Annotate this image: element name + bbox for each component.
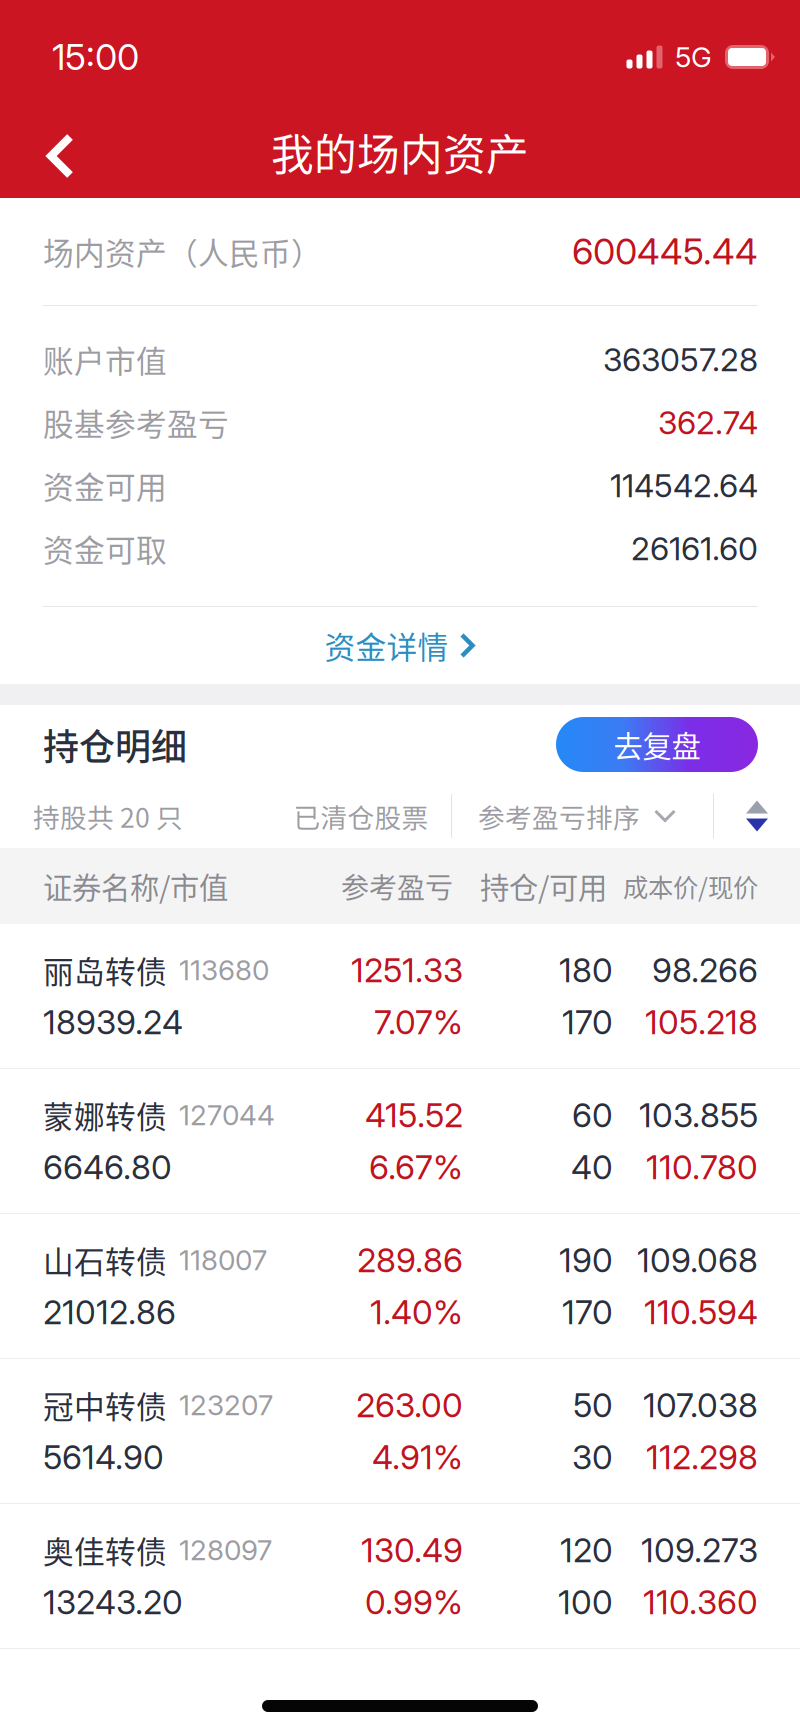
staticText: 107.038 [643,1385,758,1425]
staticText: 参考盈亏排序 [478,797,640,835]
staticText: 123207 [179,1388,273,1422]
staticText: 账户市值 [43,337,167,382]
button[interactable]: 奥佳转债 [0,1504,800,1648]
staticText: 资金详情 [324,623,448,668]
button[interactable]: 参考盈亏排序 [452,784,713,848]
button[interactable]: Sort order [714,784,800,848]
staticText: 100 [558,1582,613,1622]
staticText: 持股共 20 只 [33,797,183,835]
staticText: 110.780 [646,1147,758,1187]
staticText: 参考盈亏 [341,866,453,906]
staticText: 363057.28 [603,340,758,379]
staticText: 263.00 [356,1385,463,1425]
staticText: 15:00 [52,35,139,79]
staticText: 1.40% [370,1292,463,1332]
staticText: 7.07% [374,1002,463,1042]
staticText: 103.855 [639,1095,758,1135]
staticText: 场内资产（人民币） [43,229,322,274]
staticText: 5G [675,40,712,74]
staticText: 120 [560,1530,613,1570]
staticText: 98.266 [652,950,758,990]
staticText: 113680 [179,953,269,987]
staticText: 蒙娜转债 [43,1093,167,1137]
staticText: 奥佳转债 [43,1528,167,1572]
staticText: 成本价/现价 [623,868,758,904]
staticText: 5614.90 [43,1437,164,1477]
button[interactable]: 去复盘 [556,717,758,772]
staticText: 持仓明细 [43,718,187,770]
staticText: 110.360 [643,1582,758,1622]
button[interactable]: 蒙娜转债 [0,1069,800,1213]
staticText: 109.068 [637,1240,758,1280]
staticText: 130.49 [361,1530,463,1570]
staticText: 已清仓股票 [293,797,428,835]
staticText: 21012.86 [43,1292,176,1332]
staticText: 127044 [179,1098,275,1132]
staticText: 资金可取 [43,526,167,571]
button[interactable]: 资金详情 [0,607,800,684]
staticText: 山石转债 [43,1238,167,1282]
staticText: 362.74 [658,403,758,442]
staticText: 289.86 [357,1240,463,1280]
staticText: 6646.80 [43,1147,172,1187]
staticText: 128097 [179,1533,272,1567]
button[interactable]: 持股共 20 只 [0,784,271,848]
button[interactable]: 山石转债 [0,1214,800,1358]
staticText: 415.52 [365,1095,463,1135]
staticText: 4.91% [372,1437,463,1477]
staticText: 190 [559,1240,613,1280]
staticText: 股基参考盈亏 [43,400,229,445]
staticText: 丽岛转债 [43,948,167,992]
staticText: 持仓/可用 [480,865,607,907]
staticText: 证券名称/市值 [43,865,228,907]
staticText: 30 [572,1437,613,1477]
staticText: 110.594 [644,1292,758,1332]
staticText: 105.218 [645,1002,758,1042]
staticText: 112.298 [646,1437,758,1477]
staticText: 60 [572,1095,613,1135]
button[interactable]: Back [0,114,101,198]
staticText: 180 [559,950,613,990]
staticText: 114542.64 [610,466,758,505]
staticText: 50 [573,1385,613,1425]
staticText: 0.99% [365,1582,463,1622]
staticText: 40 [571,1147,613,1187]
staticText: 18939.24 [43,1002,183,1042]
staticText: 冠中转债 [43,1383,167,1427]
staticText: 资金可用 [43,463,167,508]
staticText: 6.67% [369,1147,463,1187]
staticText: 118007 [179,1243,267,1277]
staticText: 170 [562,1292,613,1332]
staticText: 1251.33 [351,950,463,990]
button[interactable]: 已清仓股票 [271,784,451,848]
staticText: 26161.60 [631,529,758,568]
staticText: 去复盘 [613,723,700,766]
staticText: 我的场内资产 [271,121,529,183]
staticText: 170 [562,1002,613,1042]
button[interactable]: 冠中转债 [0,1359,800,1503]
staticText: 109.273 [641,1530,758,1570]
button[interactable]: 丽岛转债 [0,924,800,1068]
staticText: 13243.20 [43,1582,183,1622]
staticText: 600445.44 [572,230,758,273]
